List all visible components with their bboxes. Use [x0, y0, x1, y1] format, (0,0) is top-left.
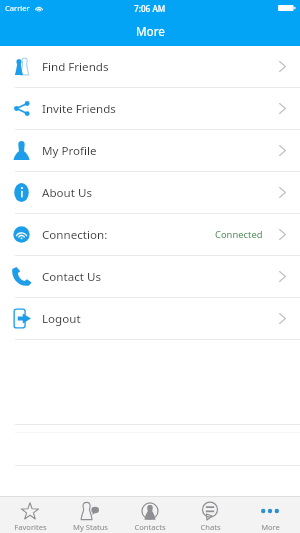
- staticText: More: [261, 522, 280, 532]
- staticText: Favorites: [14, 522, 47, 532]
- staticText: Carrier: [5, 3, 30, 13]
- button[interactable]: Find Friends: [0, 46, 300, 87]
- button[interactable]: About Us: [0, 172, 300, 213]
- staticText: Contacts: [134, 522, 166, 532]
- staticText: My Status: [73, 522, 108, 532]
- staticText: More: [136, 23, 165, 39]
- button[interactable]: Contact Us: [0, 256, 300, 297]
- staticText: Connection:: [42, 227, 108, 243]
- staticText: Connected: [215, 228, 263, 241]
- staticText: Contact Us: [42, 269, 101, 285]
- button[interactable]: More: [240, 497, 300, 533]
- button[interactable]: Contacts: [120, 497, 180, 533]
- staticText: Find Friends: [42, 59, 109, 75]
- button[interactable]: Logout: [0, 298, 300, 339]
- button[interactable]: Favorites: [0, 497, 60, 533]
- button[interactable]: Invite Friends: [0, 88, 300, 129]
- staticText: 7:06 AM: [134, 3, 166, 14]
- staticText: Chats: [200, 522, 221, 532]
- staticText: Invite Friends: [42, 101, 116, 117]
- button[interactable]: My Profile: [0, 130, 300, 171]
- staticText: Logout: [42, 311, 81, 327]
- button[interactable]: Connection:: [0, 214, 300, 255]
- staticText: My Profile: [42, 143, 97, 159]
- staticText: About Us: [42, 185, 92, 201]
- button[interactable]: My Status: [60, 497, 120, 533]
- button[interactable]: Chats: [180, 497, 240, 533]
